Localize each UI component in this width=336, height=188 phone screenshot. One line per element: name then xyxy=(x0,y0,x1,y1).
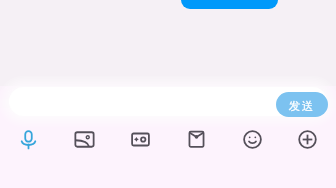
button[interactable]: Emoji xyxy=(235,122,269,156)
button[interactable]: Red packet xyxy=(179,122,213,156)
staticText: 发送 xyxy=(288,99,314,113)
button[interactable]: More xyxy=(290,122,324,156)
button[interactable]: Sticker xyxy=(123,122,157,156)
button[interactable]: Photo xyxy=(67,122,101,156)
button[interactable]: Message input xyxy=(0,76,336,130)
button[interactable]: 发送 xyxy=(276,92,328,117)
button[interactable]: Voice input xyxy=(11,122,45,156)
